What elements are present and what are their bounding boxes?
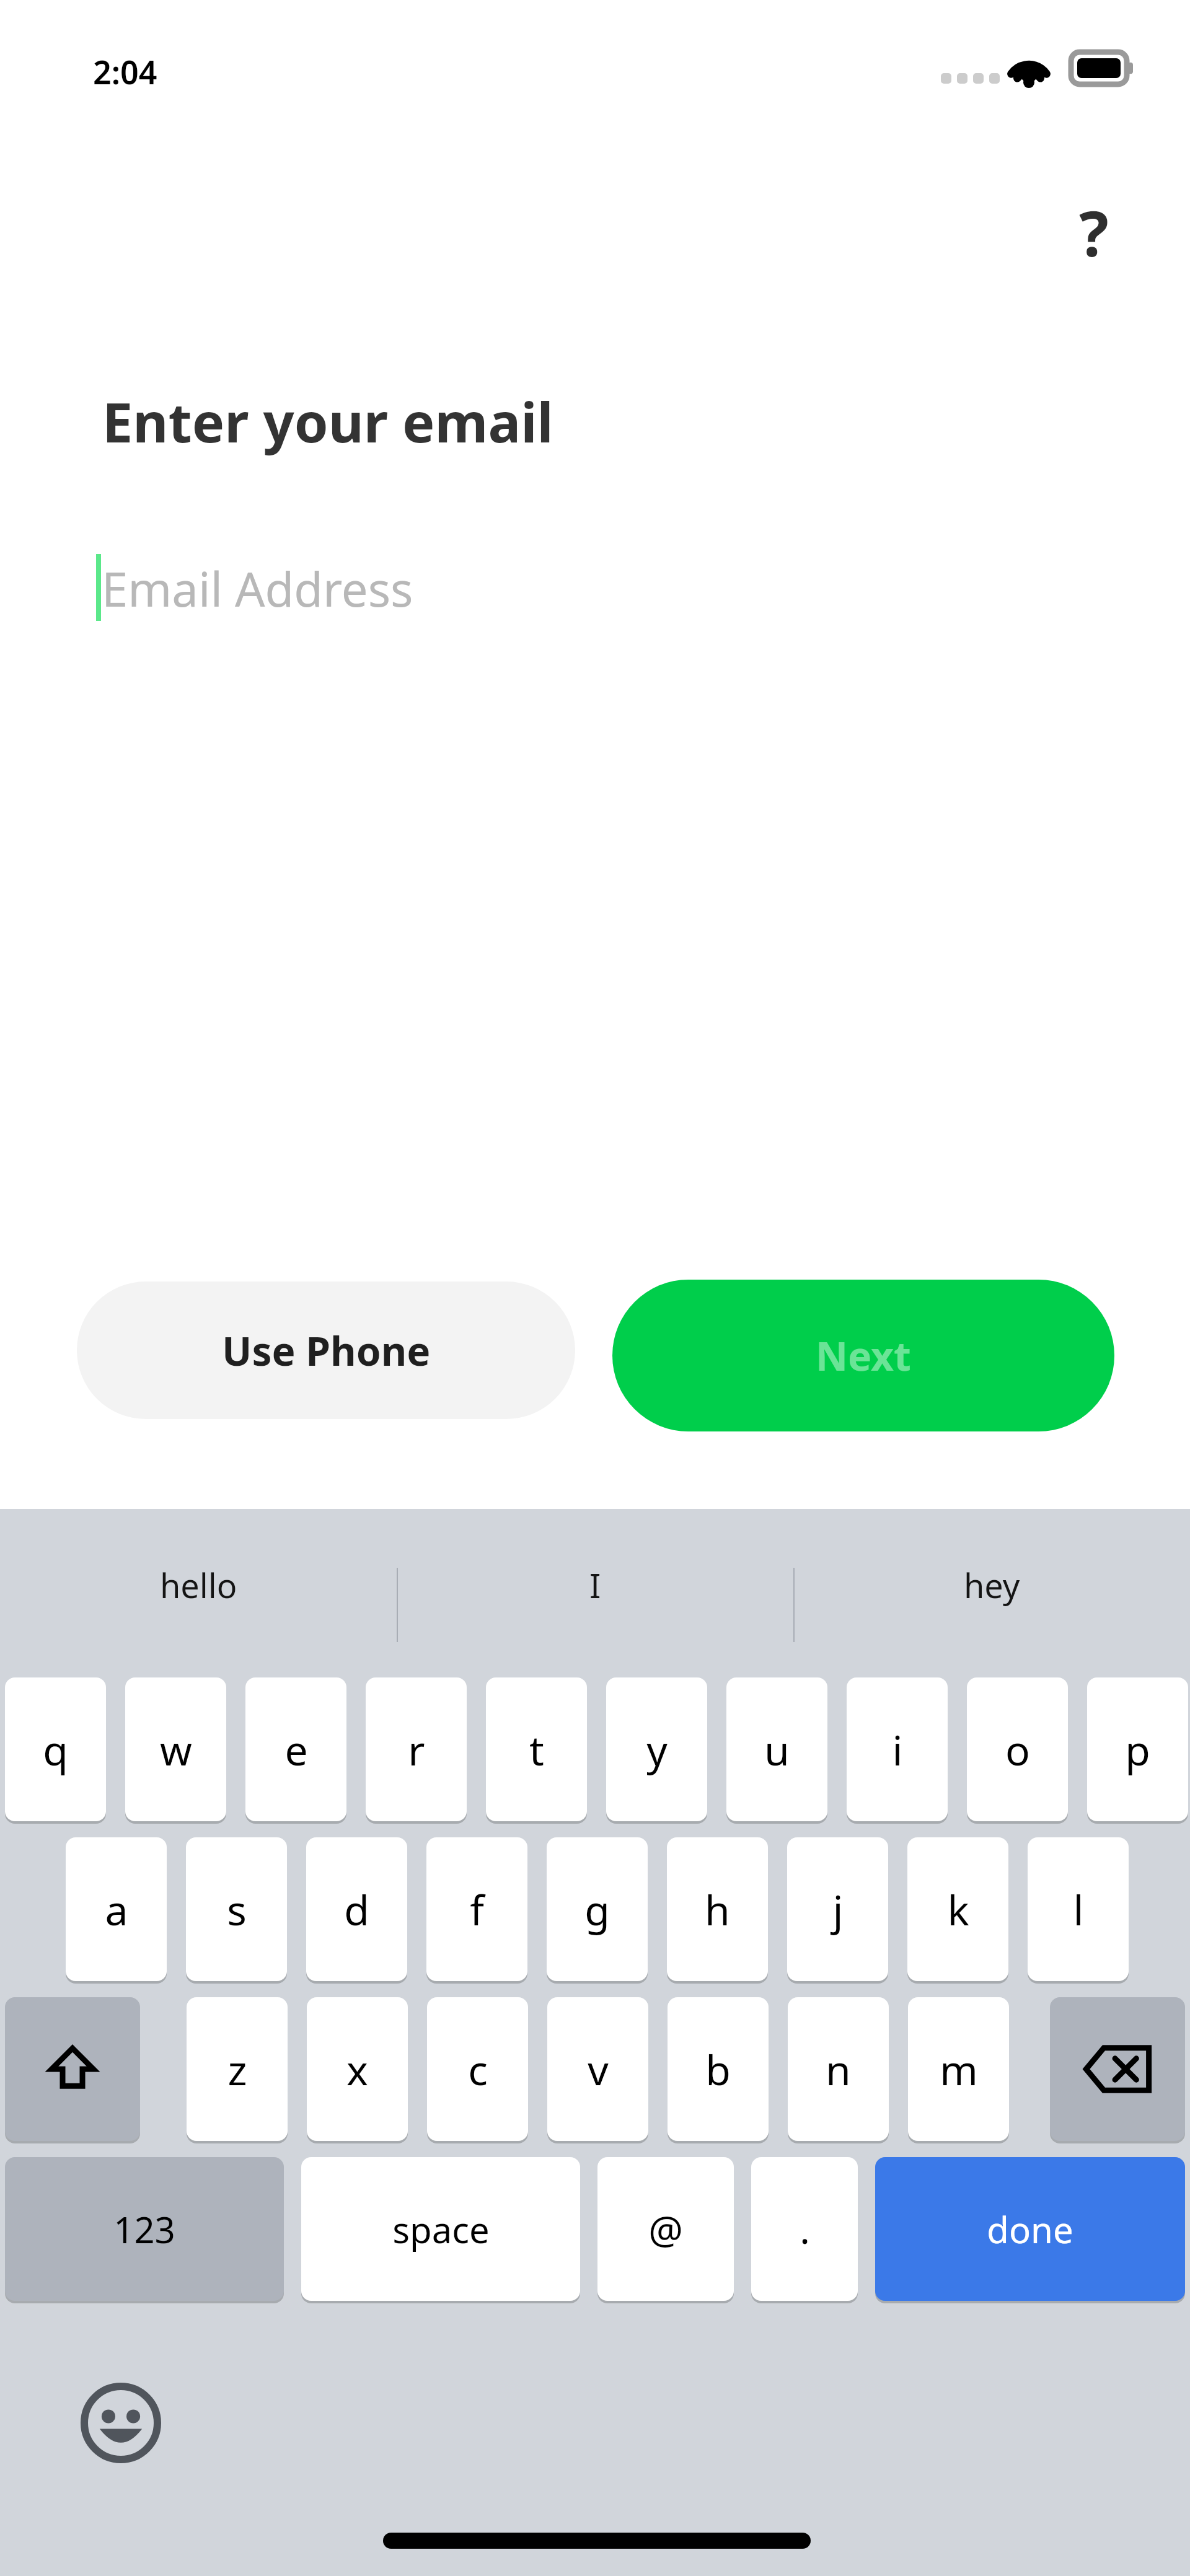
staticText: f (470, 1881, 484, 1937)
staticText: 123 (113, 2205, 175, 2254)
staticText: d (344, 1881, 369, 1937)
staticText: q (43, 1721, 68, 1777)
button[interactable]: q (5, 1677, 106, 1821)
staticText: b (705, 2041, 731, 2097)
button[interactable]: w (125, 1677, 226, 1821)
staticText: hello (160, 1562, 237, 1608)
button[interactable]: b (668, 1997, 769, 2141)
button[interactable]: Next (612, 1280, 1114, 1431)
staticText: h (705, 1881, 730, 1937)
staticText: u (764, 1721, 790, 1777)
button[interactable]: 123 (5, 2157, 284, 2301)
button[interactable]: @ (597, 2157, 734, 2301)
button[interactable]: Help (1047, 186, 1140, 279)
staticText: k (947, 1881, 969, 1937)
button[interactable]: space (301, 2157, 580, 2301)
button[interactable]: h (667, 1837, 768, 1981)
staticText: i (892, 1721, 903, 1777)
staticText: . (800, 2203, 810, 2255)
staticText: o (1005, 1721, 1030, 1777)
staticText: r (408, 1721, 425, 1777)
button[interactable]: m (908, 1997, 1009, 2141)
button[interactable]: c (427, 1997, 528, 2141)
button[interactable]: a (66, 1837, 167, 1981)
staticText: y (646, 1721, 668, 1777)
button[interactable]: s (186, 1837, 287, 1981)
button[interactable]: o (967, 1677, 1068, 1821)
staticText: z (227, 2041, 247, 2097)
staticText: v (588, 2041, 609, 2097)
button[interactable]: z (187, 1997, 288, 2141)
staticText: j (832, 1881, 844, 1937)
staticText: x (346, 2041, 368, 2097)
button[interactable]: hello (0, 1509, 397, 1661)
button[interactable]: y (606, 1677, 707, 1821)
button[interactable]: t (486, 1677, 587, 1821)
button[interactable]: e (245, 1677, 346, 1821)
staticText: I (589, 1562, 601, 1608)
button[interactable]: n (788, 1997, 889, 2141)
button[interactable]: x (307, 1997, 408, 2141)
button[interactable]: u (726, 1677, 827, 1821)
staticText: ? (1079, 190, 1109, 275)
button[interactable]: f (426, 1837, 527, 1981)
staticText: Email Address (102, 556, 413, 621)
button[interactable]: l (1028, 1837, 1129, 1981)
staticText: t (529, 1721, 544, 1777)
staticText: w (160, 1721, 192, 1777)
staticText: p (1125, 1721, 1150, 1777)
button[interactable]: k (907, 1837, 1008, 1981)
button[interactable]: Backspace (1050, 1997, 1185, 2141)
button[interactable]: I (397, 1509, 793, 1661)
button[interactable]: Shift (5, 1997, 140, 2141)
staticText: a (105, 1881, 128, 1937)
staticText: e (284, 1721, 308, 1777)
button[interactable]: done (875, 2157, 1185, 2301)
staticText: m (940, 2041, 978, 2097)
button[interactable]: Emoji keyboard (74, 2376, 167, 2469)
staticText: hey (964, 1562, 1020, 1608)
button[interactable]: g (547, 1837, 648, 1981)
staticText: g (584, 1881, 610, 1937)
button[interactable]: hey (793, 1509, 1190, 1661)
staticText: c (468, 2041, 488, 2097)
button[interactable]: p (1087, 1677, 1188, 1821)
staticText: Next (816, 1329, 911, 1383)
button[interactable]: v (547, 1997, 648, 2141)
staticText: s (227, 1881, 247, 1937)
button[interactable]: j (787, 1837, 888, 1981)
button[interactable]: Email Address (87, 545, 1103, 638)
staticText: 2:04 (93, 50, 157, 94)
staticText: n (826, 2041, 851, 2097)
staticText: l (1073, 1881, 1084, 1937)
staticText: Enter your email (102, 384, 553, 459)
button[interactable]: . (751, 2157, 858, 2301)
staticText: Use Phone (222, 1324, 431, 1378)
button[interactable]: i (847, 1677, 948, 1821)
button[interactable]: d (306, 1837, 407, 1981)
button[interactable]: Use Phone (77, 1281, 575, 1419)
staticText: @ (648, 2203, 683, 2255)
staticText: space (392, 2205, 490, 2254)
button[interactable]: r (366, 1677, 467, 1821)
staticText: done (987, 2205, 1073, 2254)
